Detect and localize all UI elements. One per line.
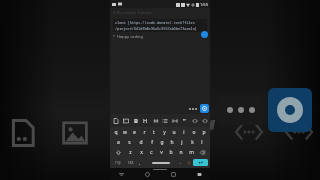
staticText: y (163, 129, 166, 136)
button[interactable]: q (111, 128, 120, 137)
staticText: c (150, 149, 153, 156)
button[interactable]: r (139, 128, 149, 137)
button[interactable]: f (146, 138, 157, 147)
staticText: o (192, 129, 196, 136)
staticText: B (134, 117, 138, 125)
staticText: . (180, 160, 182, 165)
staticText: w (123, 129, 127, 136)
staticText: t (153, 129, 155, 136)
button[interactable]: More options (188, 106, 198, 112)
button[interactable]: w (120, 128, 129, 137)
button[interactable]: Code (190, 116, 199, 125)
staticText: i (183, 129, 185, 136)
button[interactable]: Backspace (196, 148, 209, 157)
button[interactable]: i (179, 128, 189, 137)
staticText: /project/641dfb8e36a5c5567ab5be73aaa1a] (115, 26, 197, 31)
button[interactable]: Bold (131, 116, 140, 125)
button[interactable]: Quote (180, 116, 189, 125)
staticText: z (129, 149, 132, 156)
staticText: p (202, 129, 206, 136)
button[interactable]: Horizontal rule (170, 116, 179, 125)
button[interactable]: Home (140, 168, 154, 180)
button[interactable]: v (156, 148, 166, 157)
staticText: B (112, 112, 132, 153)
staticText: d (139, 139, 143, 146)
button[interactable]: Period (177, 158, 185, 167)
staticText: clone [https://code.donate/.tech?files (115, 20, 195, 25)
staticText: “ (198, 105, 216, 159)
staticText: H (143, 117, 148, 125)
staticText: g (160, 139, 164, 146)
button[interactable]: z (125, 148, 136, 157)
staticText: f (151, 139, 153, 146)
staticText: q (114, 129, 118, 136)
staticText: x (140, 149, 143, 156)
button[interactable]: Scroll handle (201, 31, 208, 38)
button[interactable]: Heading (141, 116, 150, 125)
staticText: ?1@ (115, 161, 121, 165)
staticText: Happy coding (117, 34, 143, 39)
staticText: u (172, 129, 176, 136)
staticText: l (201, 139, 203, 146)
button[interactable]: Inline code (200, 116, 209, 125)
button[interactable]: m (186, 148, 196, 157)
staticText: ☺ (187, 161, 191, 165)
button[interactable]: Shift (111, 148, 125, 157)
button[interactable]: List (160, 116, 169, 125)
staticText: H (154, 112, 177, 153)
button[interactable]: p (199, 128, 209, 137)
staticText: 1:55 (200, 2, 208, 7)
button[interactable]: b (166, 148, 176, 157)
button[interactable]: o (189, 128, 199, 137)
button[interactable]: Symbols (111, 158, 125, 167)
button[interactable]: Tab (125, 158, 136, 167)
button[interactable]: c (146, 148, 156, 157)
button[interactable]: k (187, 138, 197, 147)
staticText: n (179, 149, 183, 156)
button[interactable]: g (157, 138, 167, 147)
staticText: r (143, 129, 146, 136)
button[interactable]: Settings (200, 104, 209, 113)
staticText: b (169, 149, 173, 156)
staticText: m (189, 149, 194, 156)
staticText: * (113, 34, 117, 39)
button[interactable]: Comma (136, 158, 144, 167)
button[interactable]: x (136, 148, 146, 157)
button[interactable]: y (159, 128, 169, 137)
staticText: TAB (128, 161, 134, 165)
button[interactable]: Back (114, 168, 128, 180)
button[interactable]: j (177, 138, 187, 147)
staticText: , (139, 160, 141, 165)
button[interactable]: l (197, 138, 207, 147)
staticText: k (191, 139, 194, 146)
button[interactable]: n (176, 148, 186, 157)
staticText: h (170, 139, 174, 146)
button[interactable]: Image (121, 116, 130, 125)
button[interactable]: h (167, 138, 177, 147)
staticText: e (133, 129, 136, 136)
button[interactable]: Enter (193, 159, 208, 166)
button[interactable]: s (124, 138, 135, 147)
button[interactable]: e (129, 128, 139, 137)
button[interactable]: Space (144, 158, 177, 167)
button[interactable]: d (135, 138, 146, 147)
staticText: v (160, 149, 163, 156)
button[interactable]: Screenshot (192, 168, 206, 180)
button[interactable]: Strikethrough (151, 116, 160, 125)
button[interactable]: Emoji (185, 158, 192, 167)
staticText: “ (183, 117, 186, 125)
button[interactable]: Recents (166, 168, 180, 180)
button[interactable]: u (169, 128, 179, 137)
button[interactable]: t (149, 128, 159, 137)
staticText: a (117, 139, 120, 146)
button[interactable]: File (111, 116, 120, 125)
staticText: s (128, 139, 131, 146)
button[interactable]: a (113, 138, 124, 147)
staticText: # My mobile Tutorial (113, 10, 152, 15)
staticText: j (181, 139, 183, 146)
